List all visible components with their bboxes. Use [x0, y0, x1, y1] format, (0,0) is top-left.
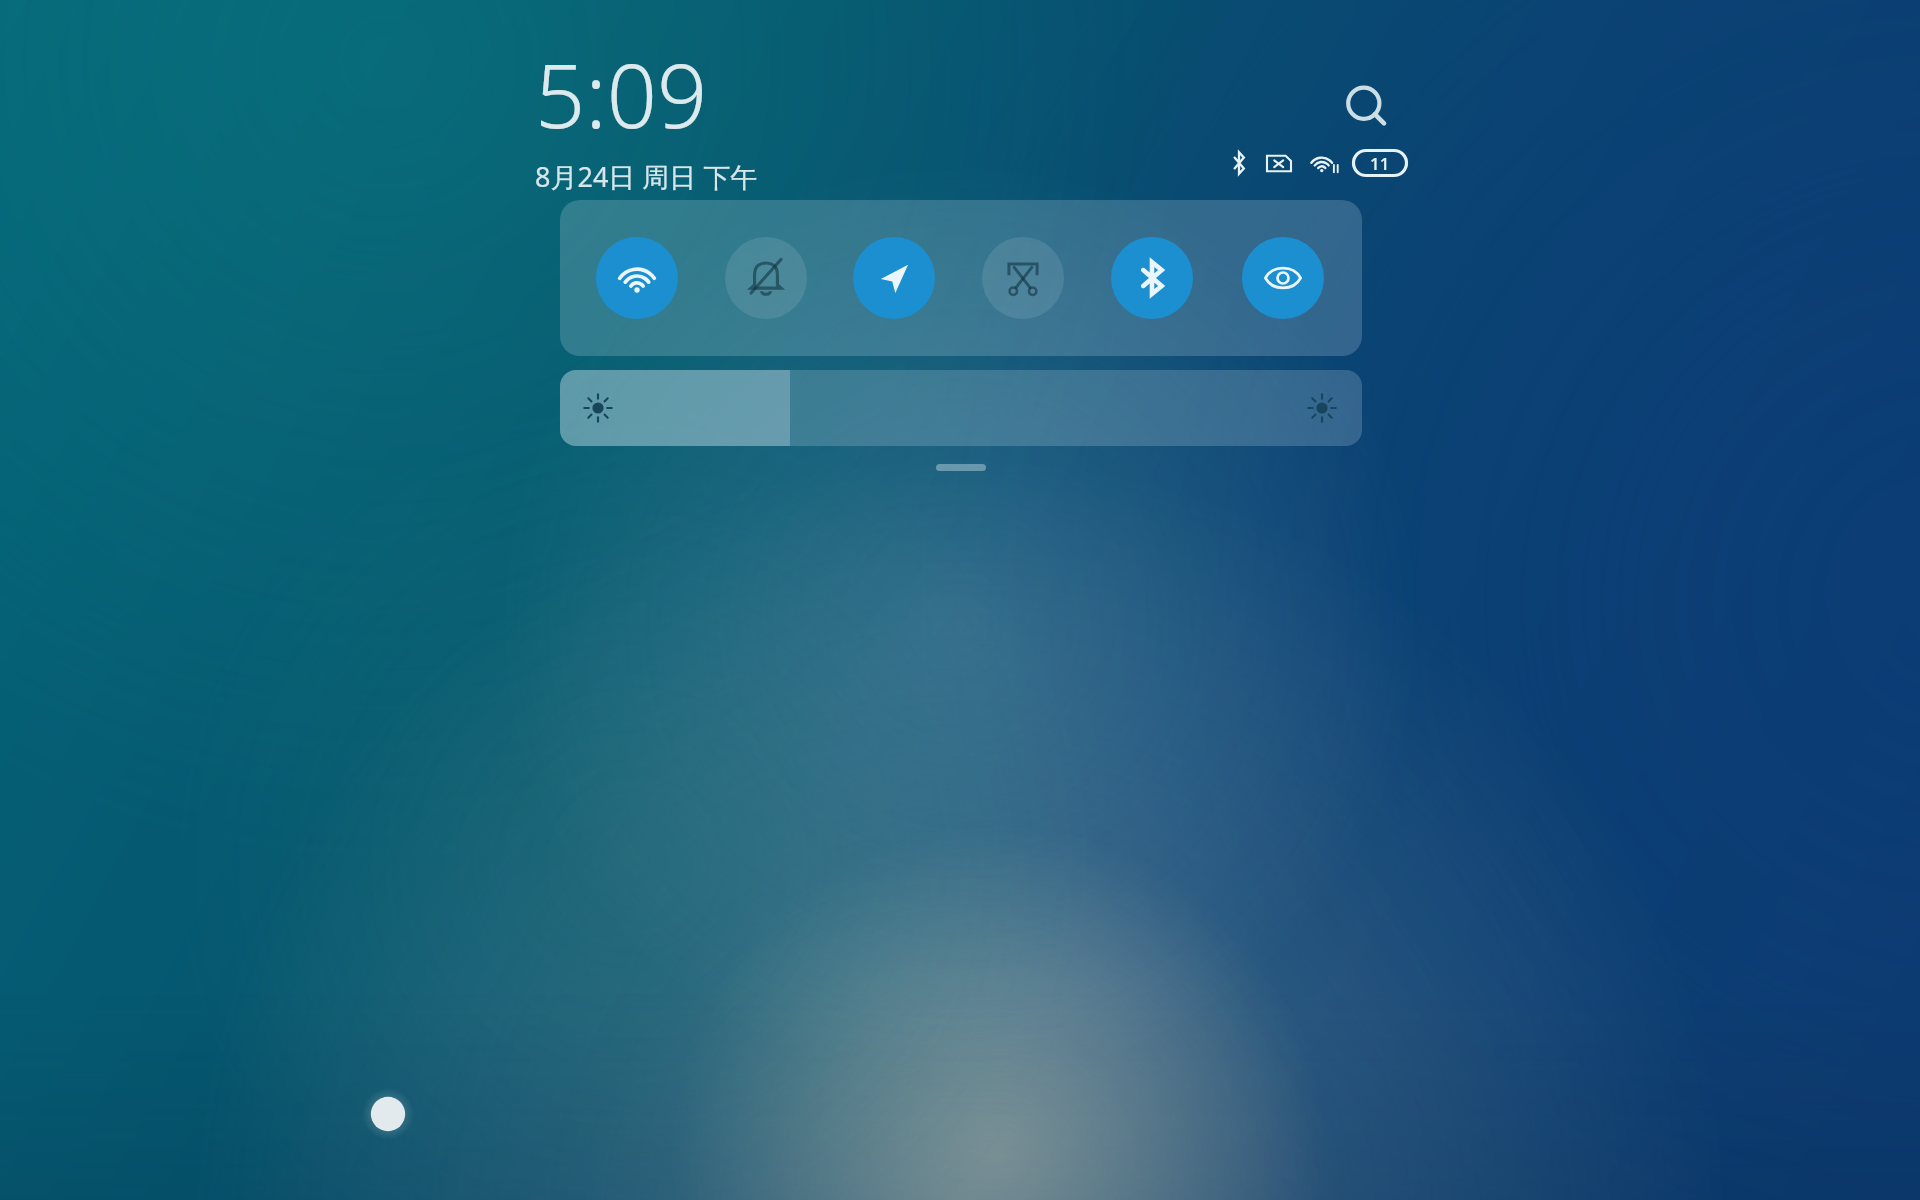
staticText: 8月24日 周日 下午 [535, 158, 758, 195]
staticText: 5:09 [535, 34, 708, 154]
button[interactable]: Screenshot [982, 237, 1064, 319]
button[interactable]: Bluetooth [1111, 237, 1193, 319]
button[interactable]: Search [1338, 78, 1398, 138]
button[interactable]: Assistive touch [362, 1088, 414, 1140]
button[interactable]: Wi-Fi [596, 237, 678, 319]
staticText: 11 [1370, 152, 1390, 175]
button[interactable]: Silent mode [725, 237, 807, 319]
button[interactable]: Brightness [560, 370, 1362, 446]
button[interactable]: Location [853, 237, 935, 319]
button[interactable]: Reading mode [1242, 237, 1324, 319]
button[interactable]: Expand panel [936, 464, 986, 471]
